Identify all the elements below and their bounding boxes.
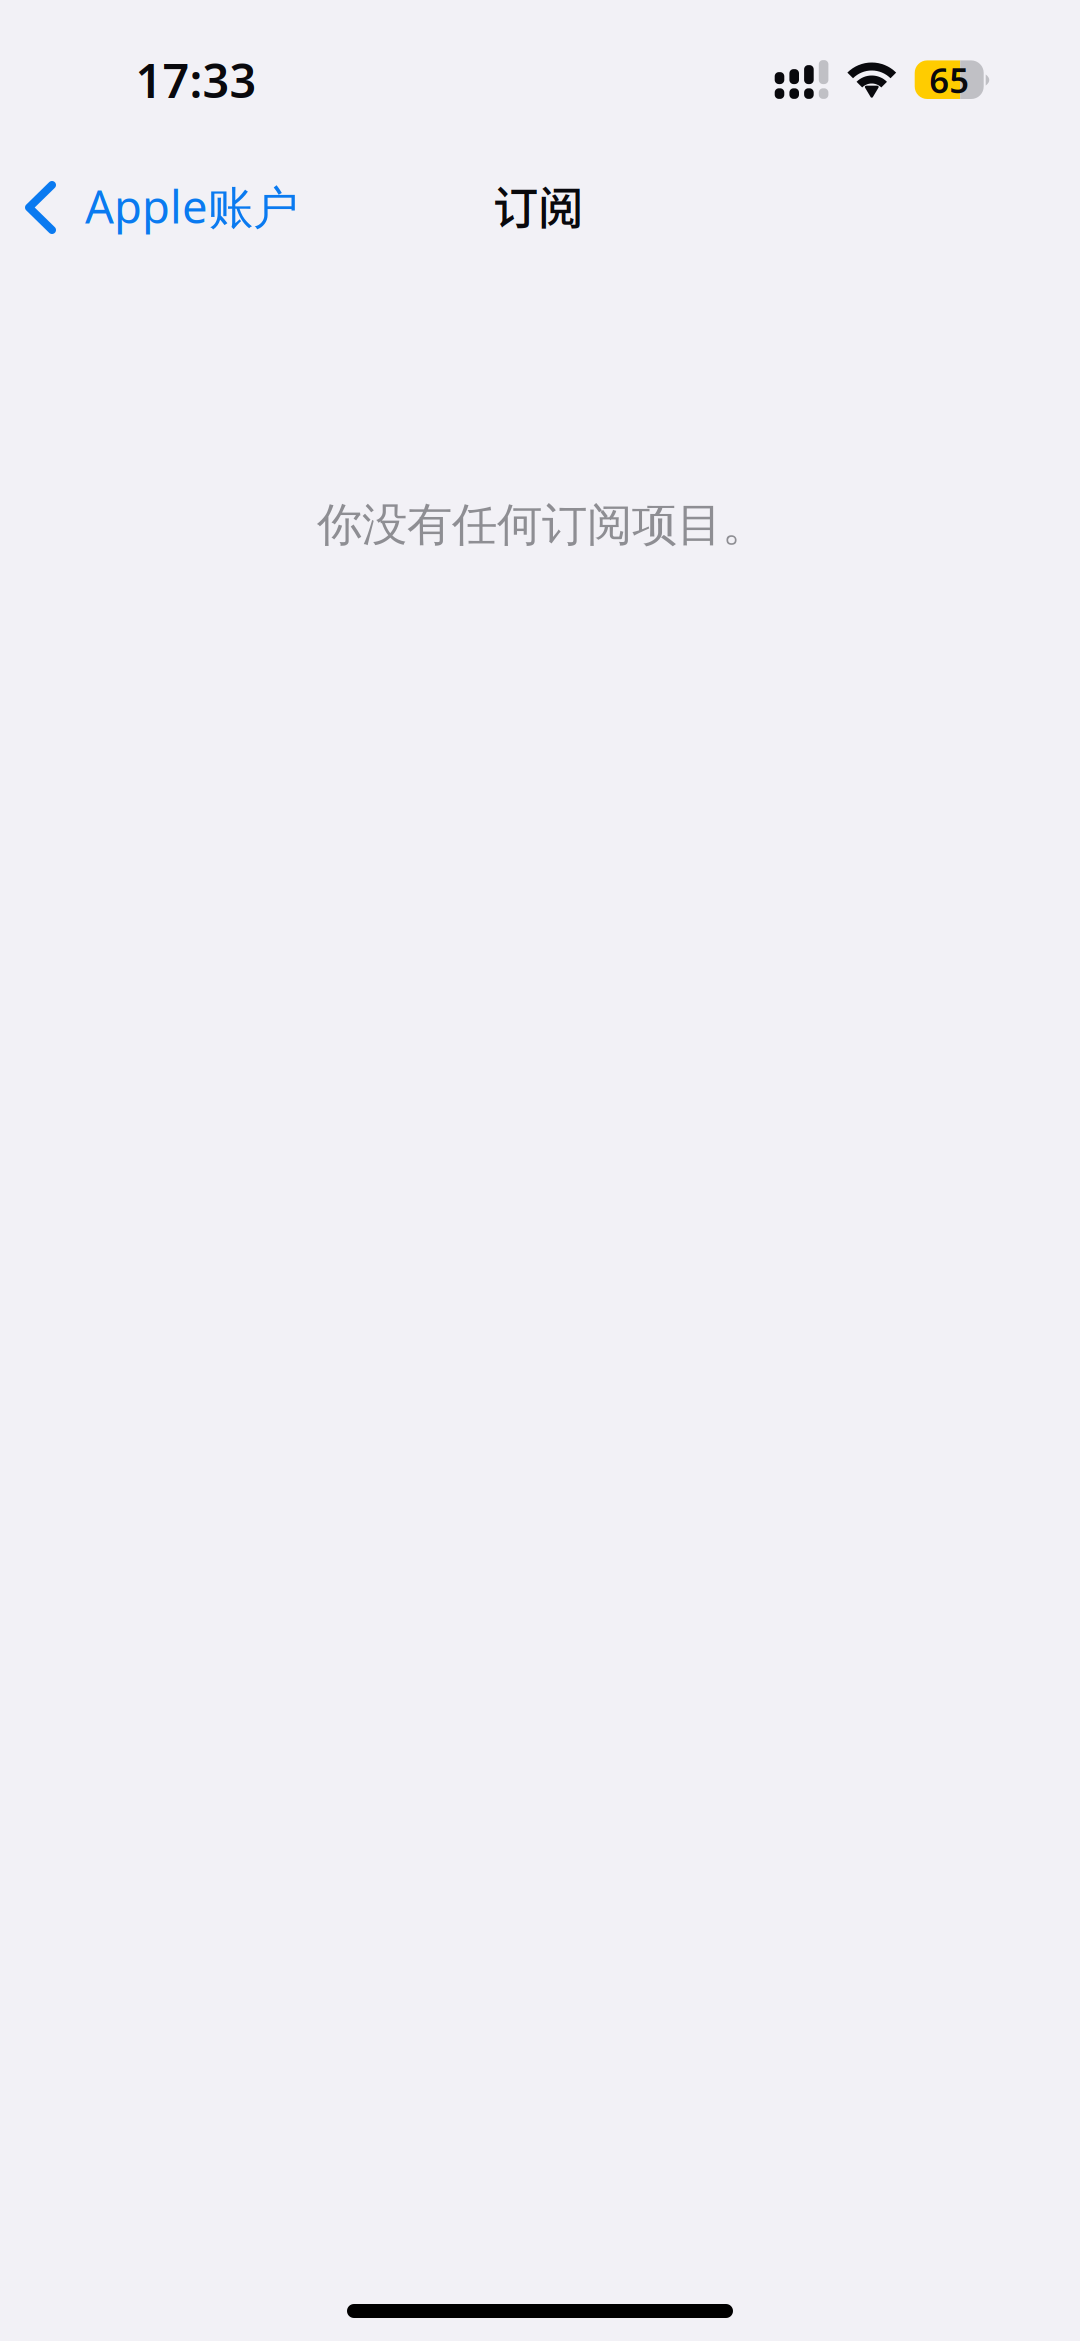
staticText: 17:33 [135,49,256,111]
staticText: 你没有任何订阅项目。 [317,497,767,553]
button[interactable]: 返回 Apple 账户 [0,158,330,258]
staticText: 65 [929,57,969,103]
staticText: 订阅 [493,172,583,238]
staticText: Apple账户 [85,176,298,236]
